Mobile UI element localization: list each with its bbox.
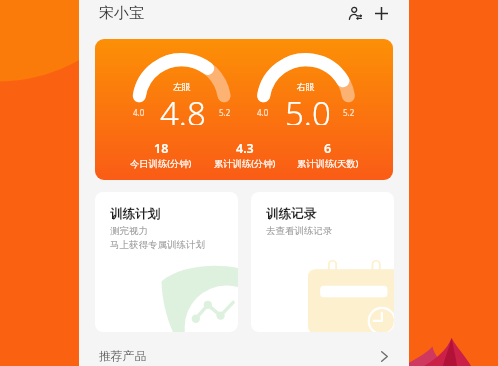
staticText: 训练记录 <box>266 206 316 222</box>
staticText: 左眼 <box>173 81 191 92</box>
staticText: 测完视力 <box>110 225 148 237</box>
button[interactable]: 训练记录 <box>251 192 394 332</box>
button[interactable]: 推荐产品 <box>99 343 388 366</box>
staticText: 去查看训练记录 <box>266 225 333 237</box>
button[interactable]: 左眼 <box>95 39 393 180</box>
staticText: 4.0 <box>133 107 145 118</box>
staticText: 训练计划 <box>110 206 160 222</box>
staticText: 马上获得专属训练计划 <box>110 239 205 251</box>
button[interactable]: Add <box>370 2 392 24</box>
staticText: 5.2 <box>343 107 355 118</box>
button[interactable]: Switch user <box>344 2 366 24</box>
staticText: 4.3 <box>236 140 254 157</box>
staticText: 累计训练(分钟) <box>214 157 276 170</box>
staticText: 6 <box>324 140 332 157</box>
staticText: 累计训练(天数) <box>297 157 359 170</box>
staticText: 18 <box>154 140 169 157</box>
staticText: 右眼 <box>297 81 315 92</box>
staticText: 4.8 <box>160 91 206 125</box>
staticText: 4.0 <box>257 107 269 118</box>
staticText: 宋小宝 <box>99 4 144 23</box>
staticText: 5.2 <box>219 107 231 118</box>
staticText: 推荐产品 <box>99 349 147 364</box>
staticText: 今日训练(分钟) <box>130 157 192 170</box>
button[interactable]: 训练计划 <box>95 192 238 332</box>
staticText: 5.0 <box>285 91 331 125</box>
